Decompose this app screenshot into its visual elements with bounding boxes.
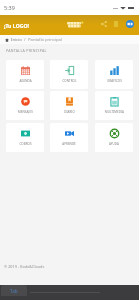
button[interactable]: MENSAJES bbox=[6, 91, 44, 120]
button[interactable]: AGENDA bbox=[6, 60, 44, 89]
button[interactable]: APRENDE bbox=[50, 123, 88, 152]
staticText: MULTIMEDIA bbox=[105, 110, 124, 114]
staticText: CONTROL bbox=[62, 79, 77, 83]
staticText: PANTALLA PRINCIPAL bbox=[6, 48, 47, 53]
staticText: GRAFICOS bbox=[107, 79, 122, 83]
button[interactable]: ¡Tu LOGO! bbox=[4, 22, 30, 29]
button[interactable]: AYUDA bbox=[95, 123, 133, 152]
button[interactable]: COBROS bbox=[6, 123, 44, 152]
button[interactable]: Share bbox=[99, 19, 109, 29]
staticText: © 2019 - Kodo&Clouds bbox=[4, 264, 45, 269]
button[interactable]: Profile bbox=[126, 20, 134, 28]
staticText: DIARIO bbox=[64, 110, 75, 114]
staticText: MENSAJES bbox=[18, 110, 33, 114]
button[interactable]: CONTROL bbox=[50, 60, 88, 89]
button[interactable]: MULTIMEDIA bbox=[95, 91, 133, 120]
staticText: Tab bbox=[10, 288, 18, 294]
staticText: AGENDA bbox=[19, 79, 32, 83]
button[interactable]: Notifications bbox=[111, 19, 121, 29]
button[interactable]: DIARIO bbox=[50, 91, 88, 120]
staticText: COBROS bbox=[19, 142, 32, 146]
staticText: / bbox=[24, 37, 26, 43]
staticText: Inicio bbox=[11, 37, 22, 43]
staticText: APRENDE bbox=[62, 142, 76, 146]
staticText: Pantalla principal bbox=[28, 37, 62, 43]
staticText: 5:39 bbox=[4, 4, 15, 11]
button[interactable]: Inicio bbox=[11, 37, 22, 43]
staticText: AYUDA bbox=[109, 142, 119, 146]
button[interactable]: Tab bbox=[1, 285, 27, 296]
button[interactable]: GRAFICOS bbox=[95, 60, 133, 89]
